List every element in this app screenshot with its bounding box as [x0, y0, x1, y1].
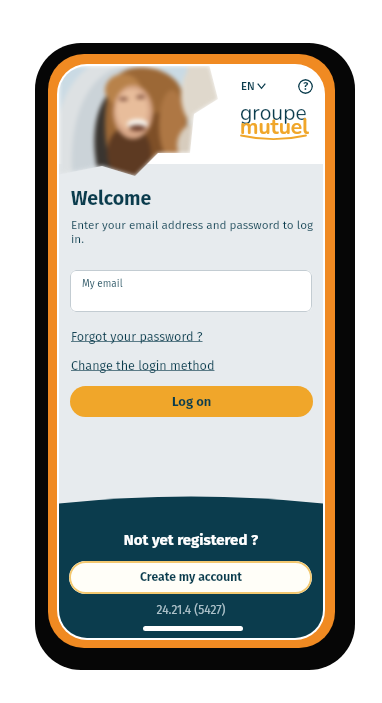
- staticText: groupe: [240, 99, 307, 128]
- button[interactable]: Change the login method: [71, 358, 215, 373]
- staticText: ?: [303, 80, 309, 93]
- staticText: My email: [82, 278, 123, 290]
- staticText: Create my account: [140, 570, 242, 585]
- button[interactable]: Help: [298, 79, 313, 94]
- button[interactable]: EN: [239, 77, 268, 95]
- staticText: 24.21.4 (5427): [59, 603, 323, 617]
- staticText: Welcome: [71, 187, 152, 210]
- button[interactable]: My email: [70, 270, 312, 312]
- staticText: Not yet registered ?: [59, 531, 323, 549]
- staticText: Enter your email address and password to…: [71, 218, 315, 247]
- button[interactable]: Create my account: [69, 561, 312, 594]
- button[interactable]: Forgot your password ?: [71, 329, 203, 344]
- button[interactable]: Log on: [70, 386, 313, 417]
- staticText: mutuel: [240, 113, 309, 142]
- staticText: EN: [241, 79, 255, 93]
- staticText: Log on: [172, 394, 212, 410]
